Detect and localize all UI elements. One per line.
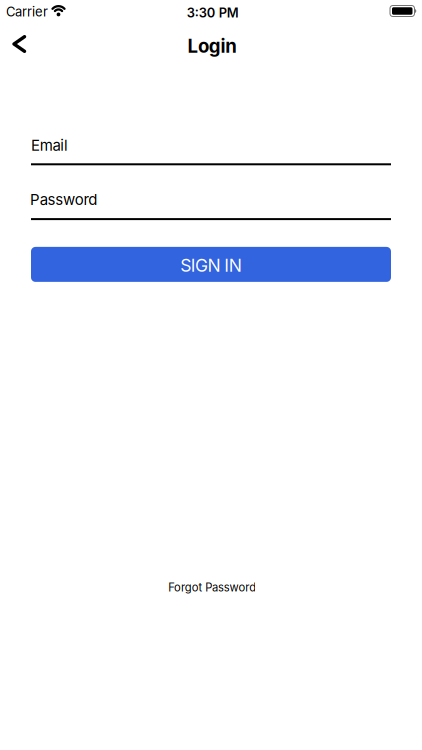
button[interactable]: Email	[31, 134, 391, 165]
button[interactable]: Password	[31, 189, 391, 220]
staticText: Forgot Password	[168, 581, 256, 594]
staticText: 3:30 PM	[187, 5, 239, 20]
button[interactable]: SIGN IN	[31, 247, 391, 282]
staticText: Email	[31, 136, 68, 154]
staticText: Login	[187, 35, 237, 57]
staticText: Password	[30, 191, 97, 208]
staticText: Carrier	[6, 4, 48, 19]
button[interactable]: Forgot Password	[159, 576, 263, 597]
staticText: SIGN IN	[180, 255, 242, 276]
button[interactable]: Back	[0, 27, 36, 61]
